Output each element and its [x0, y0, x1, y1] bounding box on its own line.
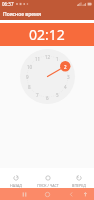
button[interactable]: ПУСК / ЧАСТ [32, 168, 63, 188]
staticText: 5 [56, 92, 59, 98]
button[interactable]: Home [41, 188, 53, 200]
button[interactable]: ВПЕРЕД [63, 168, 94, 188]
button[interactable]: Back [65, 188, 77, 200]
staticText: НАЗАД [10, 183, 22, 188]
button[interactable]: Recents [18, 188, 30, 200]
staticText: 2 [64, 64, 67, 70]
button[interactable]: Keyboard [79, 188, 91, 200]
staticText: 4 [64, 84, 67, 90]
staticText: 7 [36, 92, 39, 98]
staticText: 10 [27, 64, 33, 70]
staticText: 1 [56, 56, 59, 62]
staticText: 12 [45, 54, 51, 60]
staticText: 9 [26, 74, 29, 80]
staticText: 3 [67, 74, 70, 80]
staticText: 6 [46, 95, 49, 101]
staticText: 02:12 [29, 25, 65, 44]
staticText: ПУСК / ЧАСТ [37, 183, 59, 188]
button[interactable]: НАЗАД [0, 168, 32, 188]
staticText: Поясное время [3, 11, 41, 18]
button[interactable]: 02:12 [0, 23, 94, 46]
staticText: 06:37 [2, 1, 14, 7]
staticText: 11 [35, 56, 41, 62]
staticText: ВПЕРЕД [72, 183, 86, 188]
staticText: 8 [28, 84, 31, 90]
